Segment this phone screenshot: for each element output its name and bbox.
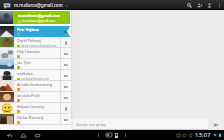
button[interactable]: More options xyxy=(214,0,224,10)
button[interactable]: Filip Hanzura xyxy=(0,48,71,59)
staticText: Filip Hanzura xyxy=(17,49,40,54)
button[interactable]: Send xyxy=(208,119,224,130)
button[interactable]: Call xyxy=(61,37,71,48)
button[interactable]: Video call xyxy=(60,26,71,37)
staticText: ozelkuba xyxy=(17,71,33,76)
button[interactable]: Petr Vojtasa xyxy=(0,26,71,37)
staticText: ozekuba@gmail.com xyxy=(21,77,50,81)
button[interactable]: Jan Tyler xyxy=(0,59,71,70)
staticText: Jan Tyler xyxy=(17,60,32,65)
button[interactable]: Video call xyxy=(61,81,71,92)
button[interactable]: Video call xyxy=(61,59,71,70)
button[interactable]: Add friend xyxy=(194,0,204,10)
button[interactable]: Václav Novotný xyxy=(0,114,71,125)
button[interactable]: Recent apps xyxy=(33,131,41,139)
button[interactable]: Anedia Sachsenberg xyxy=(0,81,71,92)
button[interactable]: Video call xyxy=(61,92,71,103)
button[interactable]: Talk xyxy=(2,1,11,10)
staticText: david.polesny@gmail.com xyxy=(21,44,57,48)
button[interactable]: Stépan Canesky xyxy=(0,103,71,114)
button[interactable]: Call xyxy=(61,103,71,114)
button[interactable]: Zadejte text zprávy xyxy=(73,119,208,130)
button[interactable]: Video call xyxy=(61,114,71,125)
staticText: m.maliaros@gmail.com xyxy=(14,2,63,8)
staticText: m.maliaros@gmail.com xyxy=(18,13,60,18)
staticText: m.maliaros@gmail.com xyxy=(22,19,56,23)
staticText: Jaroslav Pech xyxy=(17,93,40,98)
button[interactable]: Video call xyxy=(61,48,71,59)
button[interactable]: David Polesný xyxy=(0,37,71,48)
button[interactable]: Jaroslav Pech xyxy=(0,92,71,103)
button[interactable]: Video call xyxy=(61,70,71,81)
staticText: Petr Vojtasa xyxy=(17,27,40,32)
staticText: Zadejte text zprávy xyxy=(76,122,107,127)
staticText: 13:07 xyxy=(195,131,211,139)
button[interactable]: ozelkuba xyxy=(0,70,71,81)
staticText: Václav Novotný xyxy=(17,115,44,120)
staticText: Anedia Sachsenberg xyxy=(17,82,53,87)
button[interactable]: m.maliaros@gmail.com xyxy=(0,11,71,24)
button[interactable]: Search xyxy=(184,0,194,10)
button[interactable]: Home xyxy=(19,131,27,139)
staticText: Stépan Canesky xyxy=(17,104,45,109)
staticText: David Polesný xyxy=(17,38,42,43)
button[interactable]: Back xyxy=(5,131,13,139)
button[interactable]: Invites xyxy=(204,0,214,10)
